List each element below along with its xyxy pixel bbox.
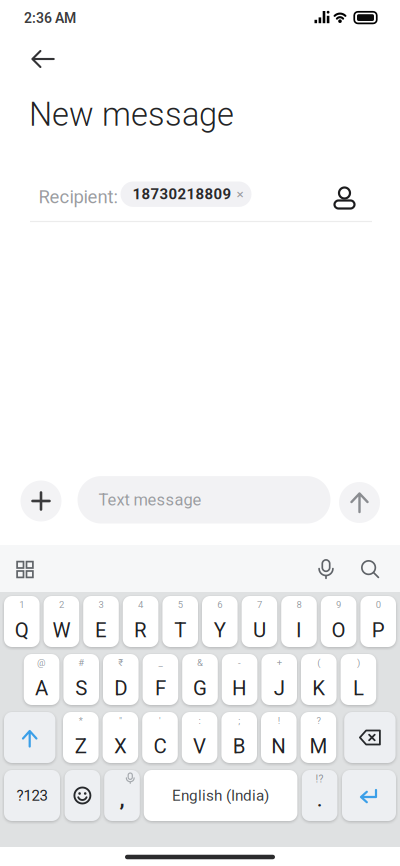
staticText: " xyxy=(119,715,122,726)
button[interactable]: 7 xyxy=(242,596,277,647)
button[interactable]: ?123 xyxy=(4,770,60,821)
button[interactable]: * xyxy=(63,712,99,763)
staticText: O xyxy=(332,618,346,642)
staticText: L xyxy=(353,676,364,700)
staticText: : xyxy=(199,715,201,726)
button[interactable]: @ xyxy=(24,654,59,705)
staticText: × xyxy=(236,186,243,202)
button[interactable]: Search xyxy=(361,560,379,578)
button[interactable]: ; xyxy=(221,712,257,763)
staticText: D xyxy=(114,676,127,700)
staticText: 3 xyxy=(98,599,103,610)
button[interactable]: _ xyxy=(143,654,178,705)
button[interactable]: Back xyxy=(31,50,55,68)
button[interactable]: Text message xyxy=(77,476,330,524)
staticText: 7 xyxy=(257,599,262,610)
staticText: 6 xyxy=(217,599,222,610)
staticText: 1 xyxy=(19,599,24,610)
button[interactable]: Emoji xyxy=(65,770,100,821)
staticText: ? xyxy=(316,715,320,726)
staticText: New message xyxy=(29,95,234,134)
staticText: ; xyxy=(238,715,240,726)
staticText: Text message xyxy=(98,490,201,509)
staticText: + xyxy=(277,657,282,668)
button[interactable]: Voice input xyxy=(317,559,335,579)
staticText: ( xyxy=(317,657,320,668)
staticText: ) xyxy=(357,657,360,668)
staticText: T xyxy=(174,618,186,642)
staticText: ₹ xyxy=(118,657,123,668)
staticText: F xyxy=(155,676,166,700)
button[interactable]: - xyxy=(222,654,257,705)
staticText: & xyxy=(197,657,203,668)
staticText: Q xyxy=(15,618,29,642)
button[interactable]: : xyxy=(182,712,217,763)
staticText: G xyxy=(193,676,207,700)
staticText: Recipient: xyxy=(38,186,117,208)
staticText: 2:36 AM xyxy=(24,10,76,26)
button[interactable]: Choose contact xyxy=(331,185,357,211)
staticText: 8 xyxy=(296,599,301,610)
staticText: 9 xyxy=(336,599,341,610)
button[interactable]: Delete xyxy=(344,712,396,763)
button[interactable]: , xyxy=(104,770,140,821)
staticText: _ xyxy=(158,657,162,668)
staticText: C xyxy=(153,734,166,758)
staticText: 4 xyxy=(138,599,143,610)
staticText: Y xyxy=(214,618,226,642)
staticText: E xyxy=(95,618,107,642)
staticText: . xyxy=(317,789,322,811)
button[interactable]: 2 xyxy=(44,596,79,647)
button[interactable]: !? xyxy=(302,770,337,821)
staticText: J xyxy=(274,676,285,700)
staticText: M xyxy=(309,734,327,758)
staticText: K xyxy=(312,676,325,700)
staticText: I xyxy=(296,618,302,642)
button[interactable]: ! xyxy=(261,712,297,763)
staticText: # xyxy=(78,657,84,668)
staticText: 0 xyxy=(376,599,381,610)
button[interactable]: ' xyxy=(142,712,178,763)
staticText: 2 xyxy=(59,599,64,610)
staticText: A xyxy=(35,676,48,700)
staticText: N xyxy=(271,734,286,758)
button[interactable]: Shift xyxy=(4,712,55,763)
staticText: X xyxy=(114,734,127,758)
staticText: R xyxy=(134,618,147,642)
staticText: H xyxy=(232,676,247,700)
staticText: @ xyxy=(37,657,46,668)
button[interactable]: 3 xyxy=(83,596,119,647)
button[interactable]: 9 xyxy=(321,596,356,647)
button[interactable]: # xyxy=(63,654,99,705)
button[interactable]: 18730218809 xyxy=(120,181,251,207)
staticText: English (India) xyxy=(172,786,269,804)
staticText: ?123 xyxy=(16,787,47,804)
staticText: ! xyxy=(278,715,280,726)
staticText: W xyxy=(52,618,70,642)
button[interactable]: Attach xyxy=(20,480,61,521)
button[interactable]: ? xyxy=(301,712,336,763)
staticText: * xyxy=(79,715,83,726)
staticText: U xyxy=(253,618,266,642)
button[interactable]: 6 xyxy=(202,596,238,647)
button[interactable]: 8 xyxy=(281,596,317,647)
button[interactable]: ₹ xyxy=(103,654,139,705)
button[interactable]: Send xyxy=(339,482,380,523)
staticText: , xyxy=(119,786,124,811)
staticText: - xyxy=(238,657,241,668)
button[interactable]: 0 xyxy=(360,596,396,647)
staticText: ' xyxy=(159,715,161,726)
button[interactable]: Space xyxy=(144,770,297,821)
button[interactable]: 4 xyxy=(123,596,158,647)
button[interactable]: Keyboard options xyxy=(16,561,34,578)
button[interactable]: Return xyxy=(342,770,396,821)
button[interactable]: 5 xyxy=(162,596,198,647)
staticText: !? xyxy=(316,773,324,785)
button[interactable]: ) xyxy=(341,654,376,705)
button[interactable]: 1 xyxy=(4,596,40,647)
button[interactable]: + xyxy=(261,654,297,705)
button[interactable]: ( xyxy=(301,654,337,705)
staticText: S xyxy=(75,676,87,700)
button[interactable]: & xyxy=(182,654,218,705)
button[interactable]: " xyxy=(103,712,138,763)
